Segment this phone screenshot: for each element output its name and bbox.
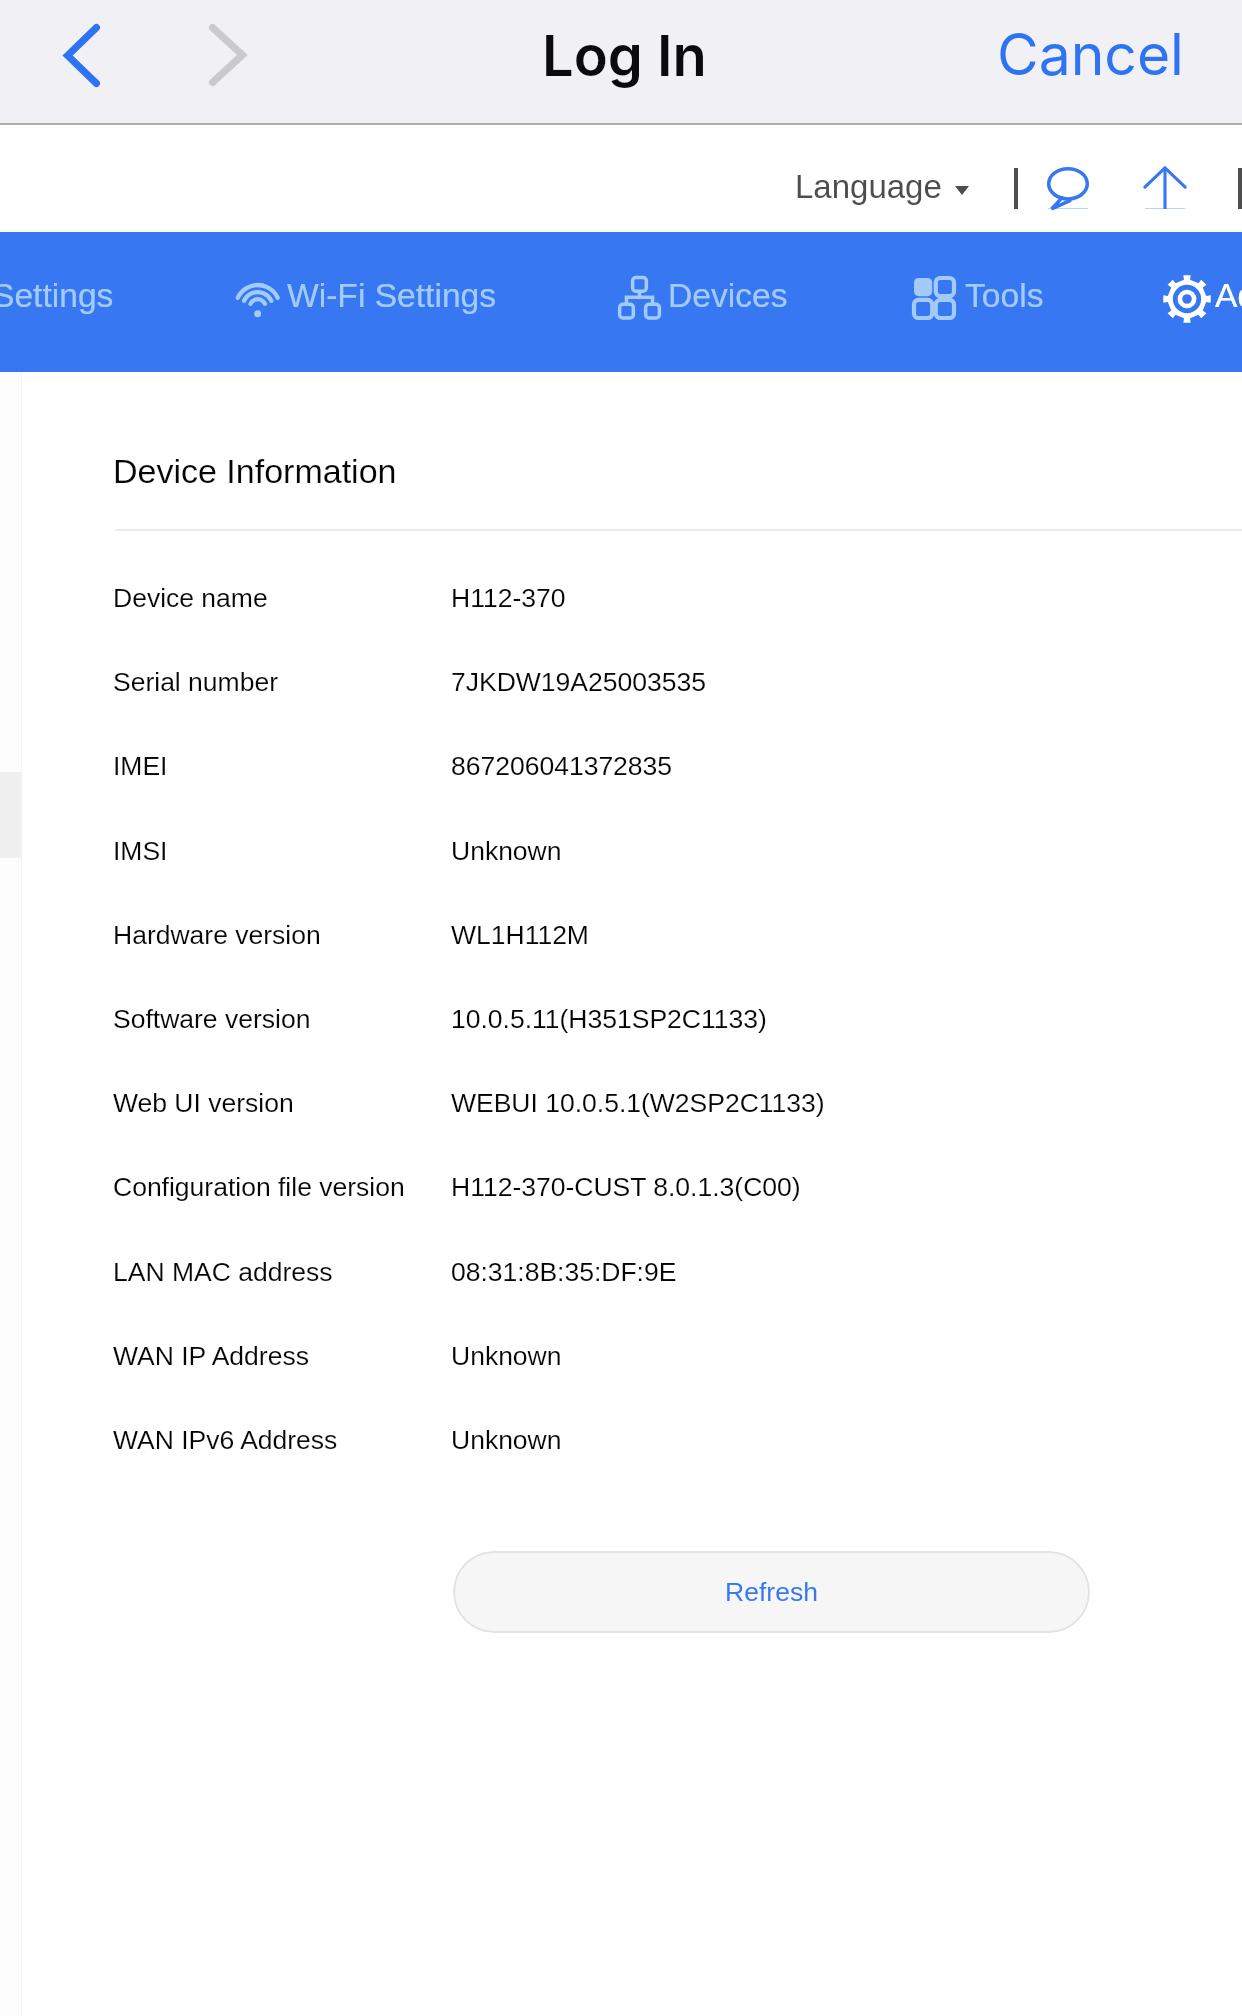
staticText: Cancel [997,20,1184,89]
button[interactable]: Wi-Fi Settings [237,232,499,372]
staticText: WL1H112M [451,920,589,950]
staticText: IMSI [113,836,168,866]
button[interactable]: Feedback [1047,167,1089,209]
staticText: Configuration file version [113,1172,405,1202]
staticText: Device Information [113,452,397,490]
staticText: Log In [542,22,707,90]
staticText: 7JKDW19A25003535 [451,667,706,697]
staticText: LAN MAC address [113,1257,333,1287]
button[interactable]: Upload [1144,167,1186,209]
button[interactable]: Advanced [1163,232,1242,372]
staticText: Devices [668,277,843,315]
staticText: IMEI [113,751,168,781]
staticText: H112-370 [451,583,566,613]
staticText: WAN IP Address [113,1341,309,1371]
staticText: Software version [113,1004,311,1034]
staticText: Unknown [451,836,562,866]
button[interactable]: Forward [171,0,283,122]
button[interactable]: Devices [619,232,794,372]
staticText: Unknown [451,1425,562,1455]
staticText: Refresh [725,1577,818,1607]
staticText: Device name [113,583,268,613]
staticText: Advanced [1215,277,1242,315]
button[interactable]: Tools [914,232,1049,372]
button[interactable]: Cancel [949,0,1242,122]
staticText: WEBUI 10.0.5.1(W2SP2C1133) [451,1088,825,1118]
staticText: Settings [0,277,117,315]
staticText: Web UI version [113,1088,294,1118]
staticText: Hardware version [113,920,321,950]
staticText: Serial number [113,667,278,697]
button[interactable]: Back [26,0,138,122]
button[interactable]: Settings [0,232,119,372]
staticText: Language [795,168,942,205]
staticText: H112-370-CUST 8.0.1.3(C00) [451,1172,801,1202]
staticText: 10.0.5.11(H351SP2C1133) [451,1004,767,1034]
button[interactable]: Language [787,160,983,216]
button[interactable]: Refresh [453,1551,1090,1633]
staticText: 867206041372835 [451,751,673,781]
staticText: 08:31:8B:35:DF:9E [451,1257,677,1287]
staticText: WAN IPv6 Address [113,1425,338,1455]
staticText: Wi-Fi Settings [287,277,549,315]
staticText: Tools [965,277,1100,315]
staticText: Unknown [451,1341,562,1371]
